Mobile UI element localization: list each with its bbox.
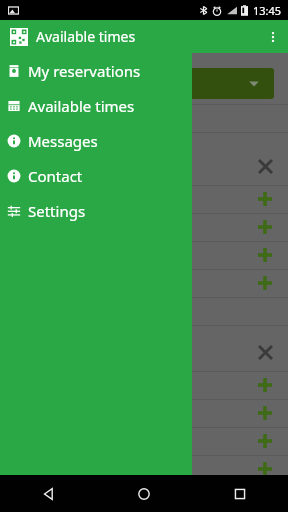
staticText: Messages bbox=[28, 131, 98, 151]
button[interactable]: App logo bbox=[10, 28, 28, 46]
button[interactable]: Center 1 bbox=[14, 68, 274, 99]
staticText: My reservations bbox=[28, 61, 141, 81]
button[interactable]: Recent apps bbox=[192, 475, 288, 512]
button[interactable]: More options bbox=[258, 20, 288, 53]
button[interactable]: Available times bbox=[0, 88, 192, 123]
button[interactable]: Add bbox=[256, 246, 274, 264]
staticText: Center 1 bbox=[24, 76, 72, 92]
button[interactable]: Add bbox=[256, 432, 274, 450]
button[interactable]: Add bbox=[256, 218, 274, 236]
button[interactable]: Settings bbox=[0, 193, 192, 228]
button[interactable]: Messages bbox=[0, 123, 192, 158]
button[interactable]: Add bbox=[256, 404, 274, 422]
button[interactable]: Home bbox=[96, 475, 192, 512]
staticText: Contact bbox=[28, 166, 83, 186]
button[interactable]: My reservations bbox=[0, 53, 192, 88]
button[interactable]: Add bbox=[256, 190, 274, 208]
button[interactable]: Contact bbox=[0, 158, 192, 193]
staticText: 13:45 bbox=[253, 3, 282, 18]
button[interactable]: Remove bbox=[256, 157, 274, 175]
button[interactable]: Back bbox=[0, 475, 96, 512]
button[interactable]: Remove bbox=[256, 343, 274, 361]
button[interactable]: Add bbox=[256, 274, 274, 292]
button[interactable]: Add bbox=[256, 460, 274, 478]
staticText: Available times bbox=[36, 27, 136, 46]
staticText: Settings bbox=[28, 201, 86, 221]
staticText: Available times bbox=[28, 96, 135, 116]
button[interactable]: Add bbox=[256, 376, 274, 394]
